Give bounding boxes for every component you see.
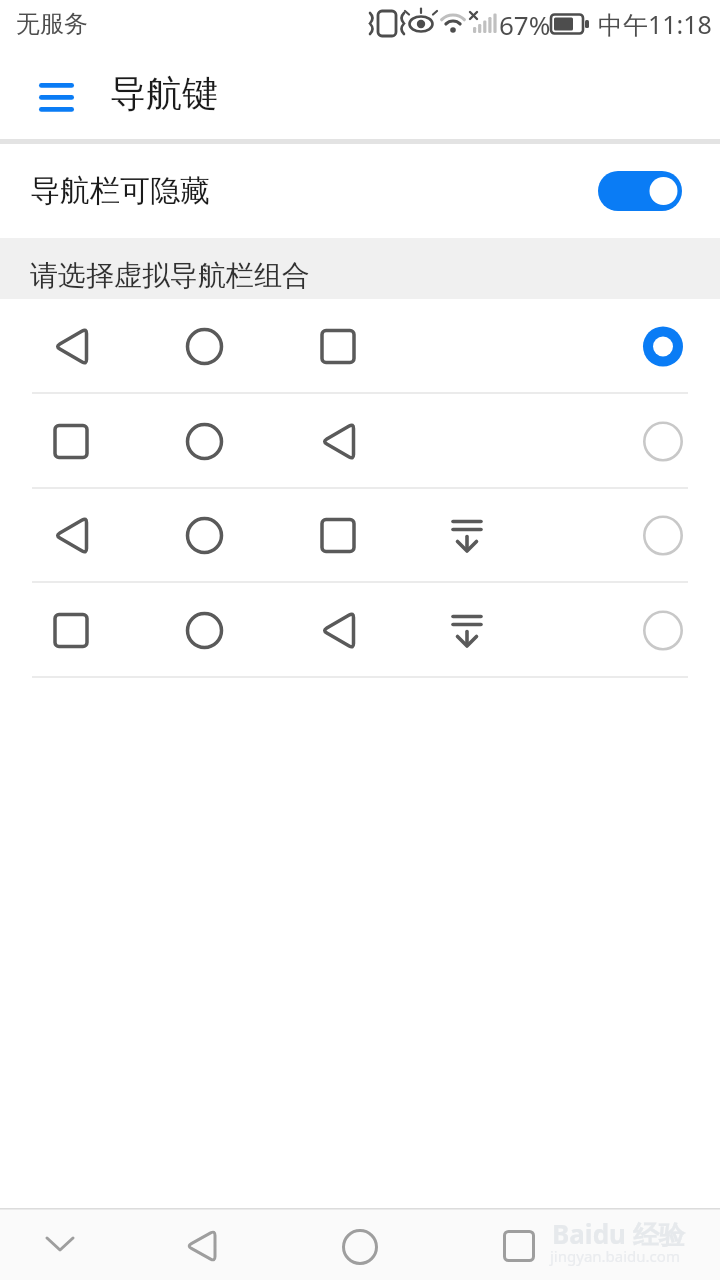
button[interactable] xyxy=(28,77,84,117)
staticText: 请选择虚拟导航栏组合 xyxy=(30,258,310,293)
staticText: 67% xyxy=(499,7,551,42)
staticText: Baidu 经验 xyxy=(552,1216,685,1252)
staticText: 无服务 xyxy=(16,9,88,39)
button[interactable] xyxy=(0,488,720,583)
staticText: 中午11:18 xyxy=(598,7,712,41)
staticText: 导航栏可隐藏 xyxy=(30,172,210,210)
button[interactable] xyxy=(471,1208,567,1280)
button[interactable] xyxy=(0,394,720,489)
staticText: 导航键 xyxy=(110,71,218,116)
button[interactable] xyxy=(0,299,720,394)
button[interactable] xyxy=(12,1208,108,1280)
button[interactable] xyxy=(0,583,720,678)
button[interactable] xyxy=(153,1208,249,1280)
staticText: jingyan.baidu.com xyxy=(550,1246,680,1266)
button[interactable] xyxy=(312,1208,408,1280)
button[interactable]: 导航栏可隐藏 xyxy=(0,144,720,238)
